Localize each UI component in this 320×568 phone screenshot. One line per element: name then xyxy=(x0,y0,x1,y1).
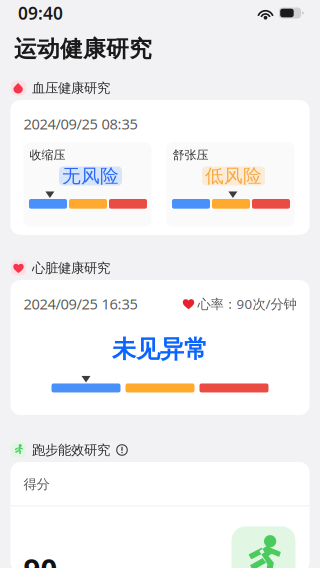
button[interactable]: 得分 xyxy=(10,462,309,568)
button[interactable]: 2024/09/25 08:35 xyxy=(10,100,309,235)
staticText: 无风险 xyxy=(62,164,119,187)
button[interactable]: 2024/09/25 16:35 xyxy=(10,280,309,415)
staticText: 2024/09/25 16:35 xyxy=(23,294,137,313)
staticText: 未见异常 xyxy=(112,334,208,364)
staticText: 2024/09/25 08:35 xyxy=(23,114,137,133)
staticText: 收缩压 xyxy=(29,148,65,162)
staticText: 低风险 xyxy=(205,164,262,187)
staticText: 心率：90次/分钟 xyxy=(197,295,296,313)
staticText: 90 xyxy=(23,549,57,568)
staticText: 血压健康研究 xyxy=(32,80,110,96)
staticText: 09:40 xyxy=(18,1,63,24)
staticText: 心脏健康研究 xyxy=(32,260,110,276)
staticText: 舒张压 xyxy=(172,148,208,162)
staticText: 跑步能效研究 xyxy=(32,442,110,458)
staticText: 得分 xyxy=(23,476,49,492)
staticText: 运动健康研究 xyxy=(14,35,152,63)
